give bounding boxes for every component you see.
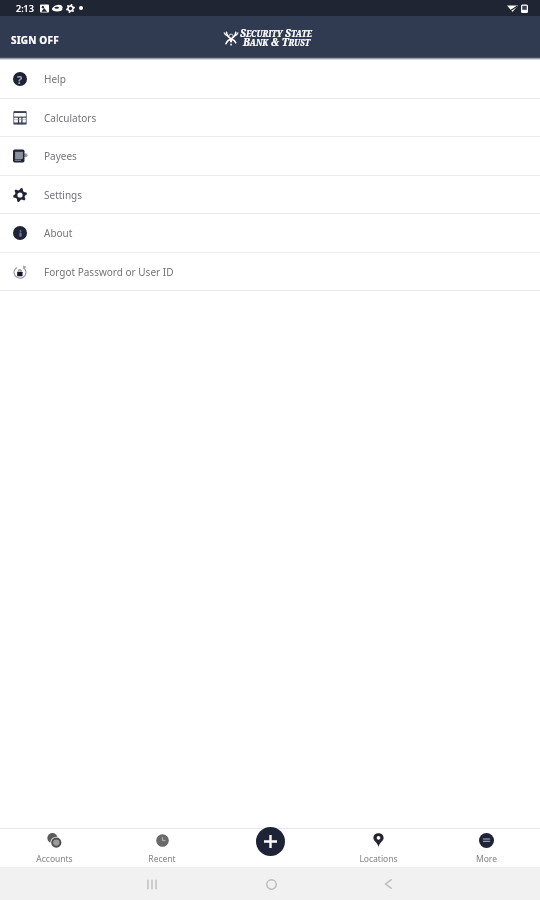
button[interactable]: SIGN OFF [0,23,70,57]
staticText: ? [17,72,23,86]
button[interactable]: Settings [0,176,540,214]
staticText: SECURITY STATE [240,26,312,40]
staticText: Accounts [36,853,73,865]
staticText: Calculators [44,111,97,125]
button[interactable]: Accounts [0,828,108,867]
staticText: Payees [44,149,77,163]
staticText: About [44,226,73,240]
button[interactable]: Recent apps [140,872,164,896]
button[interactable]: Calculators [0,99,540,137]
button[interactable]: Home [259,872,283,896]
staticText: 2:13 [16,2,34,14]
button[interactable]: About [0,214,540,253]
staticText: BANK & TRUST [243,35,310,49]
button[interactable]: More [432,828,540,867]
button[interactable]: Payees [0,137,540,176]
staticText: SIGN OFF [11,33,59,47]
staticText: Locations [359,853,398,865]
button[interactable]: Forgot Password or User ID [0,253,540,291]
staticText: Help [44,72,66,86]
staticText: Settings [44,188,83,202]
button[interactable]: Add [256,827,285,856]
button[interactable]: Back [376,872,400,896]
staticText: More [476,853,497,865]
staticText: Recent [148,853,176,865]
staticText: Forgot Password or User ID [44,265,174,279]
button[interactable]: ? [0,60,540,99]
button[interactable]: Recent [108,828,216,867]
button[interactable]: Locations [324,828,432,867]
